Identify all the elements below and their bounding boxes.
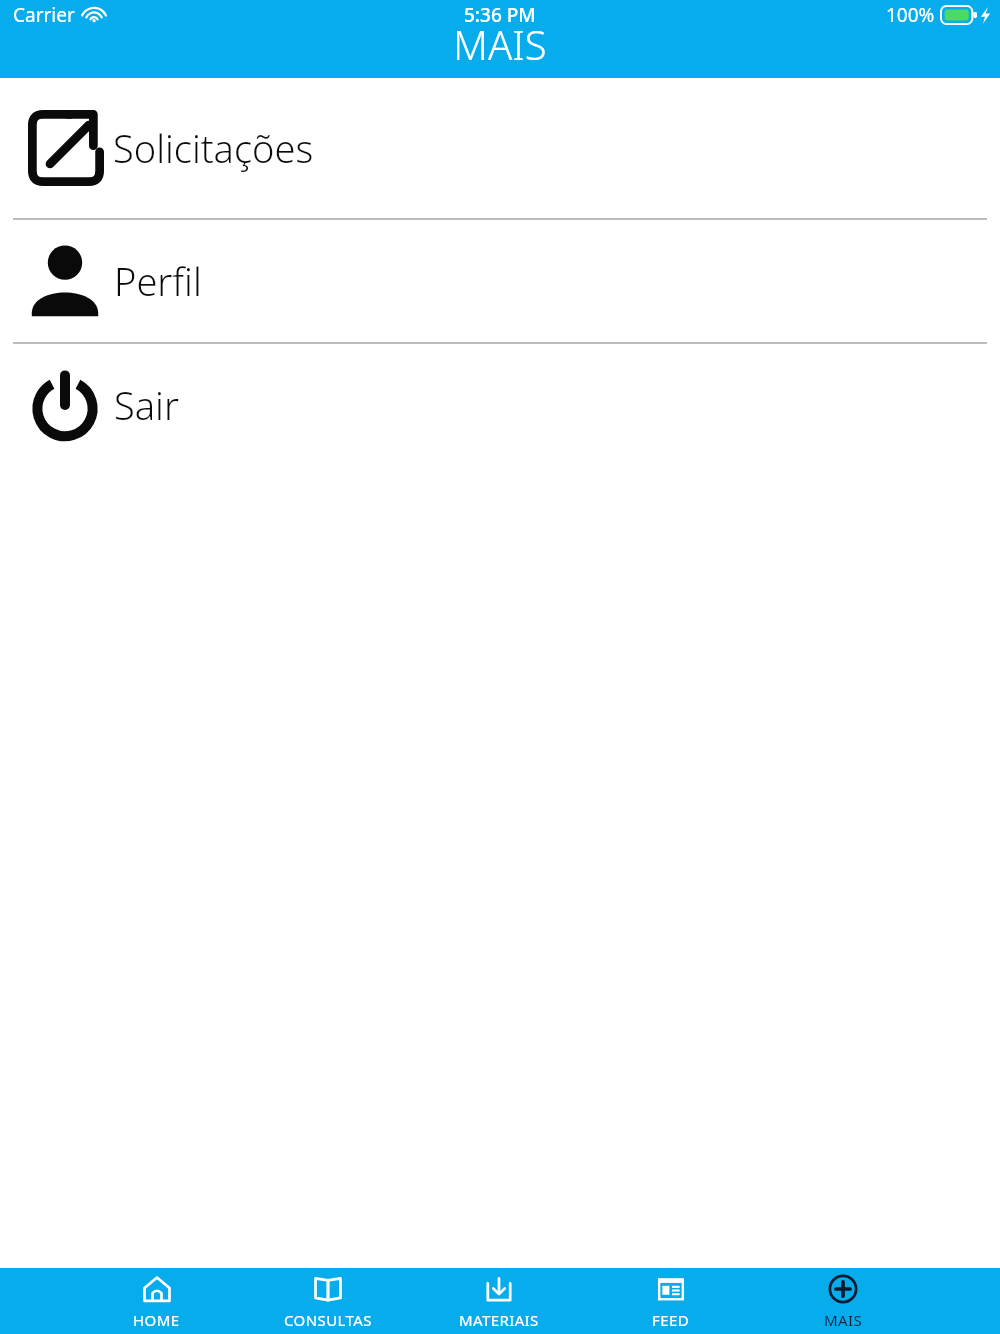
button[interactable]: Solicitações xyxy=(0,78,1000,218)
button[interactable]: Perfil xyxy=(0,220,1000,342)
staticText: FEED xyxy=(652,1310,690,1330)
staticText: MATERIAIS xyxy=(459,1310,539,1330)
other: Home xyxy=(141,1273,173,1305)
staticText: MAIS xyxy=(824,1310,863,1330)
other: Materiais xyxy=(483,1273,515,1305)
staticText: CONSULTAS xyxy=(284,1310,372,1330)
button[interactable]: Mais xyxy=(757,1268,929,1334)
button[interactable]: Materiais xyxy=(413,1268,585,1334)
staticText: Sair xyxy=(114,379,179,431)
staticText: 100% xyxy=(886,2,935,28)
button[interactable]: Feed xyxy=(585,1268,757,1334)
staticText: Perfil xyxy=(114,255,202,307)
other: Feed xyxy=(655,1273,687,1305)
button[interactable]: Home xyxy=(71,1268,242,1334)
button[interactable]: Consultas xyxy=(242,1268,413,1334)
staticText: MAIS xyxy=(453,17,547,71)
staticText: Carrier xyxy=(13,2,75,28)
button[interactable]: Sair xyxy=(0,344,1000,466)
staticText: HOME xyxy=(133,1310,180,1330)
staticText: 5:36 PM xyxy=(464,2,536,28)
other: Mais xyxy=(827,1273,859,1305)
staticText: Solicitações xyxy=(113,122,314,174)
other: Consultas xyxy=(312,1273,344,1305)
